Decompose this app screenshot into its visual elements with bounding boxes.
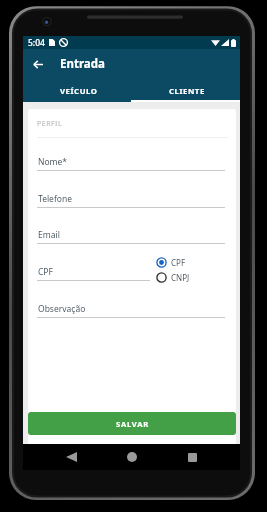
staticText: CPF: [38, 266, 53, 278]
button[interactable]: Email: [37, 229, 225, 244]
button[interactable]: Back: [27, 53, 49, 75]
button[interactable]: SALVAR: [28, 412, 236, 435]
button[interactable]: CLIENTE: [131, 78, 240, 102]
staticText: VEÍCULO: [60, 86, 98, 97]
button[interactable]: Observação: [37, 303, 225, 318]
button[interactable]: CPF: [37, 266, 150, 281]
staticText: Email: [38, 229, 60, 241]
button[interactable]: CPF: [156, 257, 186, 268]
staticText: SALVAR: [116, 419, 149, 429]
staticText: CLIENTE: [169, 86, 205, 97]
staticText: Entrada: [60, 56, 105, 72]
button[interactable]: Recent apps: [180, 445, 204, 469]
button[interactable]: CNPJ: [156, 272, 190, 283]
staticText: Telefone: [38, 193, 73, 205]
staticText: Observação: [38, 303, 86, 315]
button[interactable]: Nome*: [37, 156, 225, 171]
staticText: PERFIL: [37, 119, 63, 129]
button[interactable]: Back: [59, 445, 83, 469]
staticText: CNPJ: [171, 272, 190, 283]
button[interactable]: Telefone: [37, 193, 225, 208]
staticText: 5:04: [28, 37, 45, 49]
button[interactable]: Home: [120, 445, 144, 469]
staticText: Nome*: [38, 156, 68, 168]
staticText: CPF: [171, 257, 186, 268]
button[interactable]: VEÍCULO: [23, 78, 131, 102]
